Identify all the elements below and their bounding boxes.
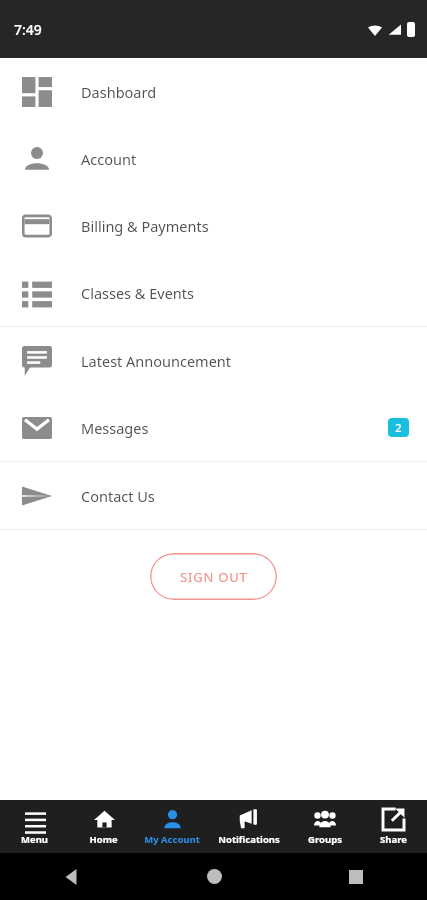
staticText: Home xyxy=(89,833,118,846)
button[interactable]: Notifications xyxy=(206,800,291,853)
button[interactable]: Account xyxy=(0,125,427,192)
staticText: Account xyxy=(81,149,137,169)
staticText: Notifications xyxy=(218,833,280,846)
button[interactable]: Home xyxy=(143,853,285,900)
button[interactable]: Latest Announcement xyxy=(0,327,427,394)
button[interactable]: SIGN OUT xyxy=(150,553,277,600)
button[interactable]: Back xyxy=(0,853,143,900)
staticText: My Account xyxy=(144,833,200,846)
button[interactable]: Messages xyxy=(0,394,427,461)
staticText: Share xyxy=(380,833,407,846)
button[interactable]: Classes & Events xyxy=(0,259,427,326)
staticText: 7:49 xyxy=(14,20,42,39)
staticText: Latest Announcement xyxy=(81,351,232,371)
button[interactable]: Recents xyxy=(285,853,427,900)
staticText: SIGN OUT xyxy=(180,568,248,586)
staticText: Messages xyxy=(81,418,149,438)
staticText: Classes & Events xyxy=(81,283,194,303)
button[interactable]: Home xyxy=(69,800,138,853)
staticText: 2 xyxy=(395,420,402,435)
button[interactable]: Dashboard xyxy=(0,58,427,125)
staticText: Dashboard xyxy=(81,82,157,102)
button[interactable]: Share xyxy=(359,800,427,853)
staticText: Menu xyxy=(21,833,48,846)
button[interactable]: My Account xyxy=(138,800,206,853)
button[interactable]: Menu xyxy=(0,800,69,853)
button[interactable]: Billing & Payments xyxy=(0,192,427,259)
button[interactable]: Contact Us xyxy=(0,462,427,529)
staticText: Contact Us xyxy=(81,486,155,506)
button[interactable]: Groups xyxy=(291,800,359,853)
staticText: Billing & Payments xyxy=(81,216,209,236)
staticText: Groups xyxy=(308,833,342,846)
